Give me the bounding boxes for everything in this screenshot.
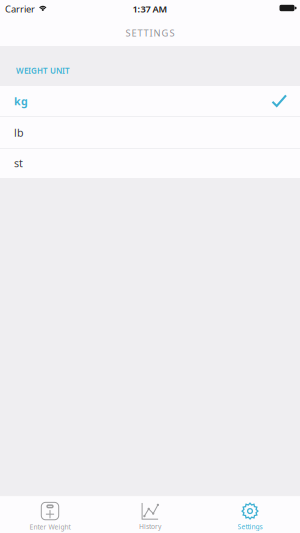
staticText: Enter Weight: [29, 523, 70, 531]
button[interactable]: kg: [0, 86, 300, 117]
staticText: Carrier: [5, 3, 35, 15]
button[interactable]: Settings: [200, 495, 300, 533]
button[interactable]: lb: [0, 117, 300, 149]
staticText: History: [139, 522, 161, 531]
staticText: WEIGHT UNIT: [16, 65, 70, 76]
button[interactable]: History: [100, 495, 200, 533]
button[interactable]: st: [0, 149, 300, 178]
staticText: st: [14, 156, 23, 170]
staticText: SETTINGS: [125, 27, 174, 39]
staticText: kg: [14, 94, 28, 108]
staticText: Settings: [237, 522, 262, 531]
staticText: lb: [14, 125, 24, 140]
button[interactable]: Enter Weight: [0, 495, 100, 533]
staticText: 1:37 AM: [132, 3, 167, 15]
